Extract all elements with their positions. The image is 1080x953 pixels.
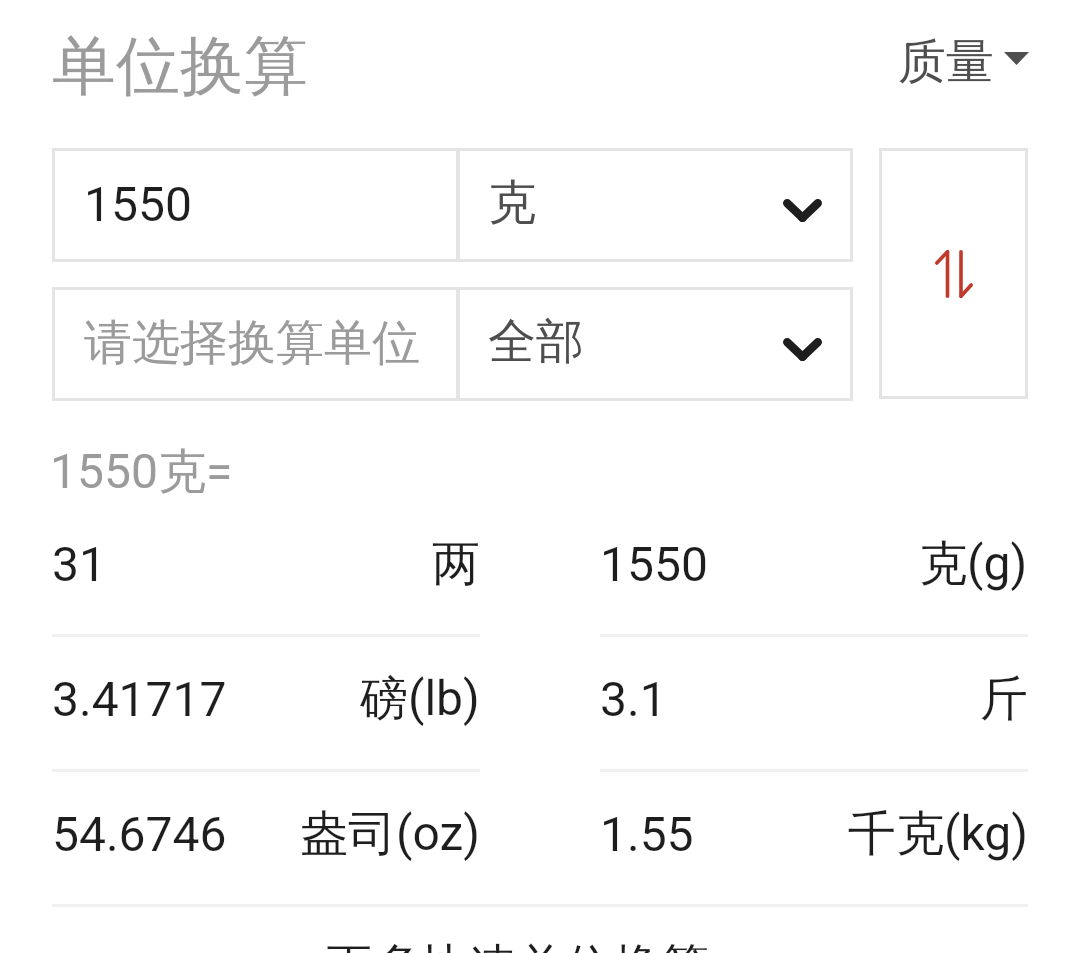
- button[interactable]: 3.1: [600, 633, 1028, 765]
- button[interactable]: 更多快速单位换算: [325, 937, 709, 953]
- button[interactable]: 54.6746: [52, 768, 480, 900]
- staticText: 3.1: [600, 671, 667, 727]
- button[interactable]: 1550: [52, 148, 456, 262]
- staticText: 克(g): [919, 534, 1028, 594]
- button[interactable]: 1550: [600, 498, 1028, 630]
- button[interactable]: 31: [52, 498, 480, 630]
- staticText: 千克(kg): [848, 804, 1028, 864]
- staticText: 斤: [980, 669, 1028, 729]
- staticText: 请选择换算单位: [84, 313, 420, 373]
- staticText: 1.55: [600, 806, 694, 862]
- staticText: 1550: [84, 176, 192, 232]
- staticText: 3.41717: [52, 671, 227, 727]
- staticText: 盎司(oz): [300, 804, 480, 864]
- button[interactable]: 1.55: [600, 768, 1028, 900]
- staticText: 1550克=: [50, 442, 233, 502]
- staticText: 质量: [898, 32, 994, 92]
- button[interactable]: 交换单位: [879, 148, 1028, 399]
- staticText: 磅(lb): [360, 669, 480, 729]
- staticText: 1550: [600, 536, 708, 592]
- staticText: 单位换算: [52, 26, 308, 107]
- button[interactable]: 全部: [460, 287, 853, 401]
- button[interactable]: 质量: [878, 22, 1080, 102]
- button[interactable]: 请选择换算单位: [52, 287, 456, 401]
- staticText: 克: [488, 173, 536, 233]
- button[interactable]: 3.41717: [52, 633, 480, 765]
- staticText: 54.6746: [52, 806, 227, 862]
- button[interactable]: 克: [460, 148, 853, 262]
- staticText: 两: [432, 534, 480, 594]
- staticText: 31: [52, 536, 106, 592]
- staticText: 全部: [488, 312, 584, 372]
